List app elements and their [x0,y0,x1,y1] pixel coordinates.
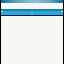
button[interactable] [1,0,63,3]
